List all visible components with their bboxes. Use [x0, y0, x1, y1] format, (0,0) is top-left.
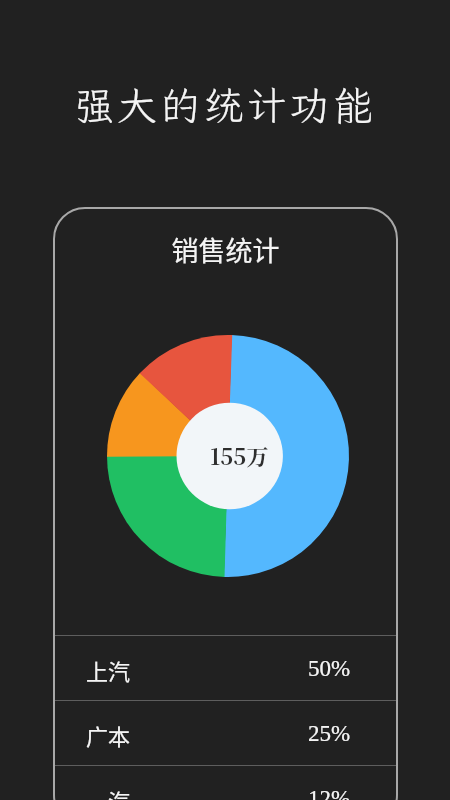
staticText: 一汽 [86, 784, 131, 800]
staticText: 销售统计 [53, 230, 398, 269]
staticText: 上汽 [86, 654, 131, 686]
staticText: 50% [308, 656, 351, 681]
staticText: 广本 [86, 719, 131, 751]
staticText: 强大的统计功能 [0, 79, 450, 132]
button[interactable]: 一汽 [53, 766, 398, 800]
staticText: 25% [308, 721, 351, 746]
staticText: 12% [308, 786, 351, 800]
button[interactable]: 上汽 [53, 636, 398, 700]
staticText: 155万 [210, 440, 269, 472]
button[interactable]: 广本 [53, 701, 398, 765]
